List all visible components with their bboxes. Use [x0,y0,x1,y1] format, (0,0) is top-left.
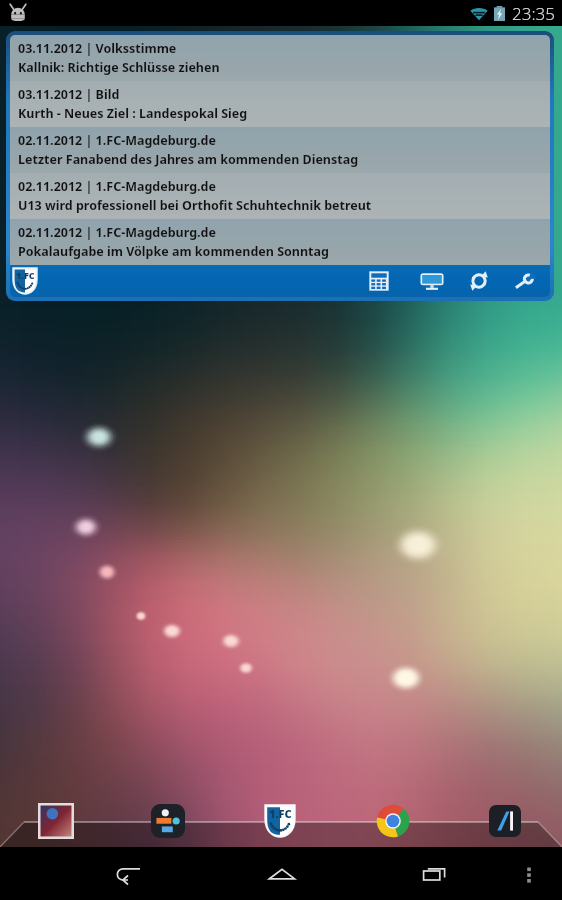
staticText: 02.11.2012 | 1.FC-Magdeburg.de [18,178,216,195]
staticText: Kallnik: Richtige Schlüsse ziehen [18,59,220,76]
button[interactable]: Chrome [372,800,414,842]
button[interactable]: Refresh [463,265,495,297]
staticText: 1.FC [269,806,292,821]
button[interactable]: More options [514,859,544,889]
button[interactable]: Home [255,847,308,900]
staticText: 1.FC [16,269,35,281]
staticText: 02.11.2012 | 1.FC-Magdeburg.de [18,224,216,241]
button[interactable]: Recent apps [408,847,461,900]
staticText: 03.11.2012 | Bild [18,86,120,103]
staticText: 23:35 [512,2,555,25]
button[interactable]: Play Store [147,800,189,842]
button[interactable]: App drawer [484,800,526,842]
button[interactable]: Live ticker [416,265,448,297]
button[interactable]: Gallery [35,800,77,842]
button[interactable]: Back [101,847,154,900]
button[interactable]: 02.11.2012 | 1.FC-Magdeburg.de [10,127,550,173]
staticText: 02.11.2012 | 1.FC-Magdeburg.de [18,132,216,149]
button[interactable]: League table [363,265,395,297]
button[interactable]: 02.11.2012 | 1.FC-Magdeburg.de [10,173,550,219]
button[interactable]: Settings [508,265,540,297]
staticText: Kurth - Neues Ziel : Landespokal Sieg [18,105,248,122]
button[interactable]: 1.FC Magdeburg [259,800,301,842]
button[interactable]: 03.11.2012 | Volksstimme [10,35,550,81]
button[interactable]: 02.11.2012 | 1.FC-Magdeburg.de [10,219,550,265]
staticText: 03.11.2012 | Volksstimme [18,40,177,57]
staticText: U13 wird professionell bei Orthofit Schu… [18,197,372,214]
staticText: Letzter Fanabend des Jahres am kommenden… [18,151,359,168]
staticText: Pokalaufgabe im Völpke am kommenden Sonn… [18,243,329,260]
button[interactable]: 03.11.2012 | Bild [10,81,550,127]
